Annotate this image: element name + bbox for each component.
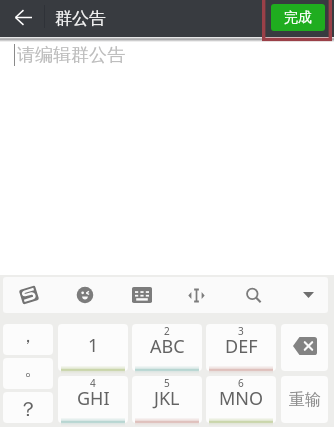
button[interactable]: Hide keyboard (274, 277, 328, 313)
staticText: 5 (164, 376, 170, 390)
staticText: ， (19, 325, 37, 348)
button[interactable]: 4 (58, 376, 128, 423)
staticText: 6 (238, 376, 244, 390)
staticText: JKL (154, 386, 180, 411)
button[interactable]: Delete (281, 324, 328, 371)
button[interactable]: 1 (58, 324, 128, 371)
button[interactable]: 2 (132, 324, 202, 371)
button[interactable]: 完成 (271, 4, 325, 31)
staticText: ABC (150, 334, 185, 359)
button[interactable]: Emoji (57, 277, 111, 313)
staticText: 群公告 (55, 8, 106, 29)
staticText: DEF (225, 334, 258, 359)
button[interactable]: Back (0, 0, 46, 37)
staticText: 2 (164, 324, 170, 338)
button[interactable]: 。 (3, 358, 53, 389)
staticText: 3 (238, 324, 244, 338)
staticText: 重输 (289, 390, 321, 410)
staticText: 4 (90, 376, 96, 390)
button[interactable]: Search (219, 277, 274, 313)
staticText: MNO (219, 386, 264, 411)
staticText: 。 (24, 358, 42, 381)
button[interactable]: 6 (206, 376, 276, 423)
staticText: 1 (88, 333, 99, 358)
button[interactable]: Sogou input method (3, 277, 57, 313)
button[interactable]: ， (3, 324, 53, 355)
staticText: ？ (18, 397, 38, 422)
staticText: 完成 (284, 9, 312, 27)
button[interactable]: 3 (206, 324, 276, 371)
button[interactable]: ？ (3, 392, 53, 423)
staticText: GHI (77, 386, 110, 411)
staticText: 请编辑群公告 (17, 44, 125, 67)
button[interactable]: Move cursor (165, 277, 219, 313)
button[interactable]: Keyboard layout (111, 277, 165, 313)
button[interactable]: 重输 (281, 376, 328, 423)
button[interactable]: 5 (132, 376, 202, 423)
